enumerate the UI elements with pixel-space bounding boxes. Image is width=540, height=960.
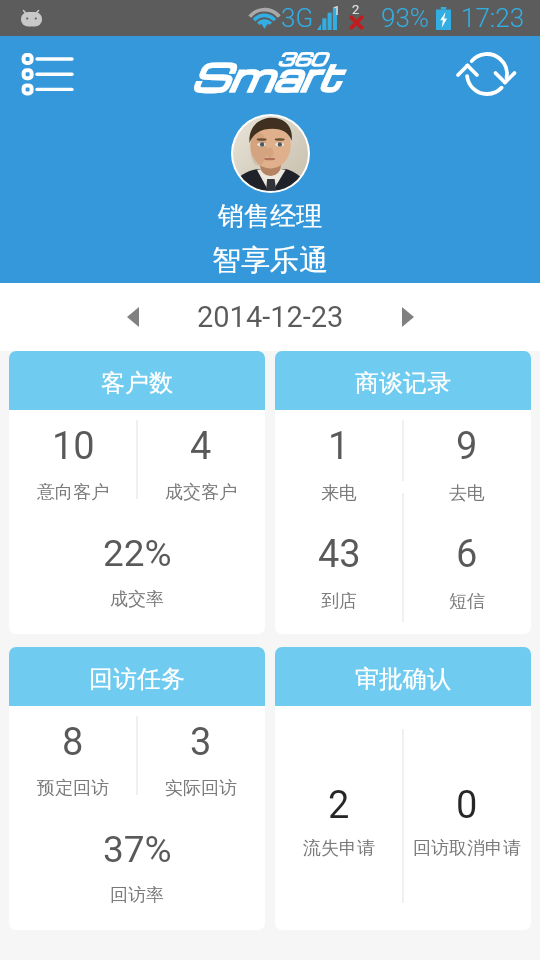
staticText: 4	[190, 424, 212, 469]
staticText: 预定回访	[37, 777, 109, 800]
button[interactable]: 回访任务	[9, 647, 265, 930]
staticText: 1	[328, 424, 350, 469]
staticText: 来电	[321, 482, 357, 505]
staticText: 成交客户	[165, 481, 237, 504]
staticText: 审批确认	[355, 664, 451, 694]
button[interactable]: 审批确认	[275, 647, 531, 930]
staticText: 意向客户	[37, 481, 109, 504]
staticText: 37%	[103, 828, 172, 871]
staticText: 流失申请	[303, 837, 375, 860]
staticText: 0	[456, 783, 478, 828]
staticText: 商谈记录	[355, 368, 451, 398]
staticText: 回访取消申请	[413, 837, 521, 860]
staticText: 43	[318, 532, 361, 577]
staticText: 22%	[103, 532, 172, 575]
staticText: 10	[52, 424, 95, 469]
button[interactable]: 客户数	[9, 351, 265, 634]
staticText: 360	[277, 46, 326, 70]
button[interactable]: Refresh	[457, 44, 517, 104]
staticText: 6	[456, 532, 478, 577]
button[interactable]: Profile	[233, 116, 308, 191]
staticText: 8	[62, 720, 84, 765]
button[interactable]: Menu	[10, 48, 80, 98]
button[interactable]: Previous day	[107, 291, 159, 343]
staticText: 智享乐通	[212, 242, 328, 279]
staticText: 实际回访	[165, 777, 237, 800]
staticText: 3	[190, 720, 212, 765]
staticText: 到店	[321, 590, 357, 613]
staticText: 短信	[449, 590, 485, 613]
staticText: 93%	[381, 3, 430, 33]
staticText: Smart	[190, 50, 339, 101]
staticText: 回访任务	[89, 664, 185, 694]
staticText: 回访率	[110, 884, 164, 907]
button[interactable]: Next day	[382, 291, 434, 343]
staticText: 2014-12-23	[197, 300, 344, 334]
staticText: 销售经理	[218, 200, 322, 233]
staticText: 去电	[449, 482, 485, 505]
button[interactable]: 商谈记录	[275, 351, 531, 634]
staticText: 9	[456, 424, 478, 469]
staticText: 客户数	[101, 368, 173, 398]
staticText: 17:23	[461, 3, 525, 33]
staticText: 成交率	[110, 588, 164, 611]
staticText: 2	[328, 783, 350, 828]
staticText: 2	[352, 2, 360, 17]
staticText: 3G	[281, 3, 314, 33]
staticText: 1	[333, 3, 341, 18]
